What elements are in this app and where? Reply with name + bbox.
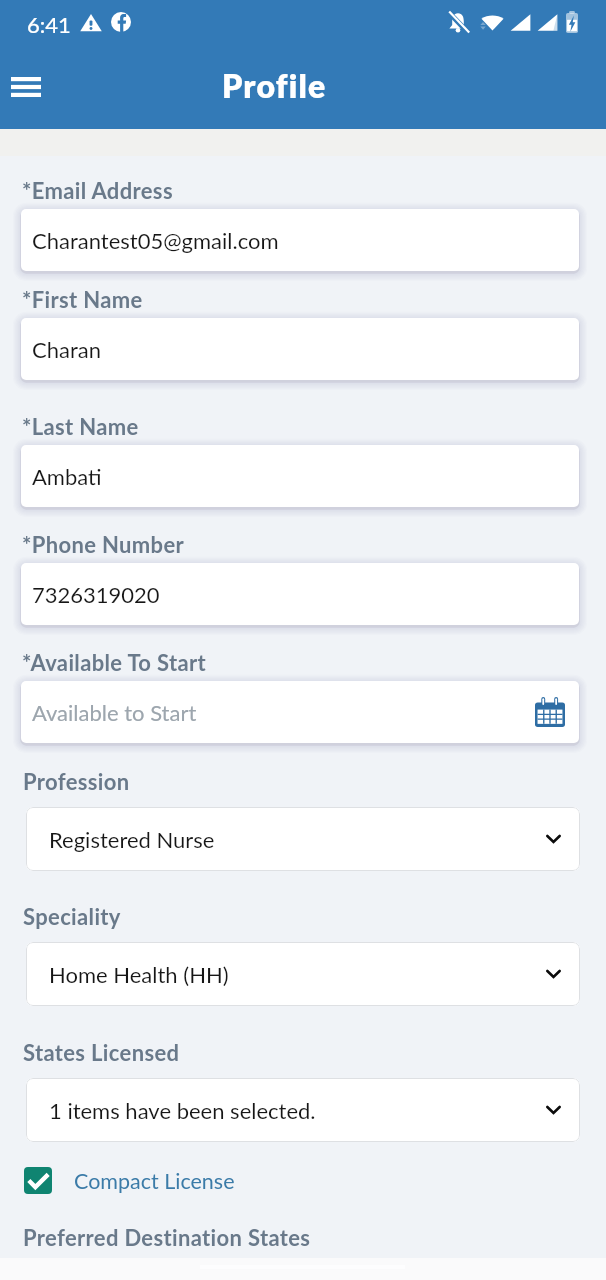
staticText: *Available To Start xyxy=(22,649,207,675)
staticText: *Email Address xyxy=(22,177,173,203)
button[interactable]: Expand options xyxy=(540,1097,566,1123)
button[interactable]: Open navigation menu xyxy=(0,62,52,112)
button[interactable]: 1 items have been selected. xyxy=(26,1078,580,1142)
button[interactable]: Expand options xyxy=(540,826,566,852)
staticText: *Phone Number xyxy=(22,531,185,557)
staticText: *Last Name xyxy=(22,413,139,439)
button[interactable]: Expand options xyxy=(540,961,566,987)
button[interactable]: Registered Nurse xyxy=(26,807,580,871)
staticText: Ambati xyxy=(32,463,102,489)
staticText: *First Name xyxy=(22,286,143,312)
staticText: Charan xyxy=(32,336,101,362)
button[interactable]: Home Health (HH) xyxy=(26,942,580,1006)
staticText: 1 items have been selected. xyxy=(49,1097,316,1123)
staticText: 7326319020 xyxy=(32,581,160,607)
staticText: Available to Start xyxy=(32,699,197,725)
staticText: 6:41 xyxy=(27,11,71,37)
staticText: Preferred Destination States xyxy=(23,1224,311,1250)
button[interactable]: Open date picker xyxy=(533,695,567,729)
button[interactable]: Ambati xyxy=(21,445,579,507)
staticText: Registered Nurse xyxy=(49,826,215,852)
staticText: Home Health (HH) xyxy=(49,961,229,987)
button[interactable]: Compact License xyxy=(24,1167,235,1194)
button[interactable]: Charantest05@gmail.com xyxy=(21,209,579,271)
staticText: Profession xyxy=(23,768,130,794)
button[interactable]: 7326319020 xyxy=(21,563,579,625)
staticText: Speciality xyxy=(23,903,121,929)
staticText: States Licensed xyxy=(23,1039,180,1065)
staticText: Charantest05@gmail.com xyxy=(32,227,279,253)
button[interactable]: Charan xyxy=(21,318,579,380)
staticText: Compact License xyxy=(74,1168,235,1194)
button[interactable]: Available to Start xyxy=(21,681,579,743)
staticText: Profile xyxy=(222,66,327,104)
